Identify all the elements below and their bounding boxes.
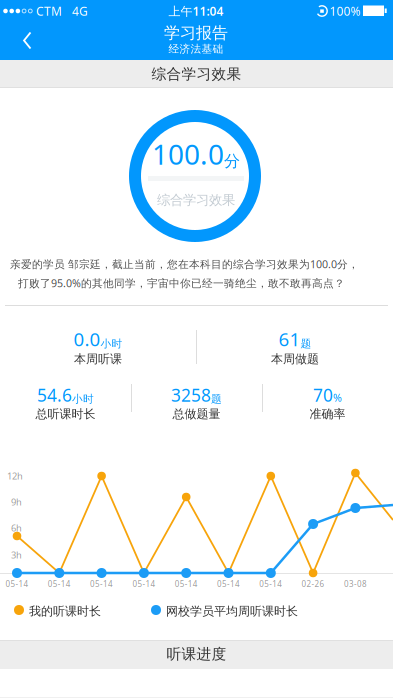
staticText: 3h xyxy=(11,549,22,561)
staticText: 05-14 xyxy=(48,579,71,589)
staticText: 61题 xyxy=(278,327,311,351)
staticText: 我的听课时长 xyxy=(29,604,101,619)
staticText: 上午11:04 xyxy=(168,3,223,19)
staticText: 总听课时长 xyxy=(35,407,95,421)
staticText: 打败了95.0%的其他同学，宇宙中你已经一骑绝尘，敢不敢再高点？ xyxy=(18,276,345,290)
staticText: 100.0分 xyxy=(152,135,240,173)
staticText: 4G xyxy=(72,3,88,19)
staticText: 05-14 xyxy=(5,579,28,589)
staticText: 学习报告 xyxy=(164,23,228,43)
staticText: 9h xyxy=(11,496,22,508)
staticText: 70% xyxy=(313,383,342,406)
staticText: CTM xyxy=(36,3,62,19)
staticText: 综合学习效果 xyxy=(157,192,235,208)
button[interactable] xyxy=(0,0,44,60)
staticText: 准确率 xyxy=(309,407,345,421)
staticText: 05-14 xyxy=(90,579,113,589)
staticText: 听课进度 xyxy=(166,645,226,663)
staticText: 100% xyxy=(329,3,360,19)
staticText: 经济法基础 xyxy=(168,42,223,55)
staticText: 54.6小时 xyxy=(37,383,94,406)
staticText: 网校学员平均周听课时长 xyxy=(166,604,298,619)
staticText: 本周听课 xyxy=(74,352,122,366)
staticText: 05-14 xyxy=(217,579,240,589)
staticText: 03-08 xyxy=(344,579,367,589)
staticText: 3258题 xyxy=(171,383,222,406)
staticText: 综合学习效果 xyxy=(151,65,241,83)
staticText: 05-14 xyxy=(132,579,155,589)
staticText: 总做题量 xyxy=(172,407,220,421)
staticText: 6h xyxy=(11,522,22,534)
staticText: 0.0小时 xyxy=(73,327,122,351)
staticText: 12h xyxy=(7,470,23,482)
staticText: 本周做题 xyxy=(271,352,319,366)
staticText: 亲爱的学员 邹宗廷，截止当前，您在本科目的综合学习效果为100.0分， xyxy=(10,257,359,271)
staticText: 05-14 xyxy=(175,579,198,589)
staticText: 05-14 xyxy=(259,579,282,589)
staticText: 02-26 xyxy=(302,579,325,589)
